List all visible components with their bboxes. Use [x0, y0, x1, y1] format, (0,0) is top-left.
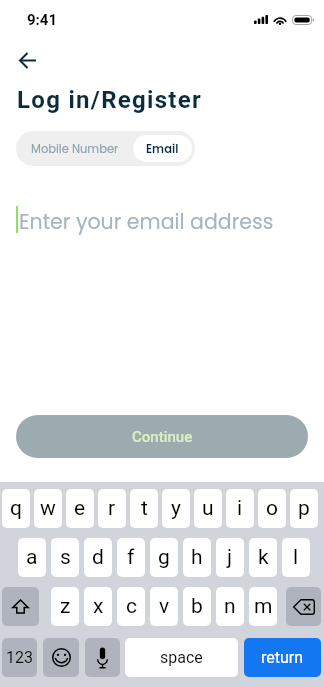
button[interactable]: p — [290, 489, 318, 528]
button[interactable]: u — [194, 489, 222, 528]
button[interactable]: q — [2, 489, 30, 528]
button[interactable]: i — [226, 489, 254, 528]
staticText: space — [160, 648, 203, 667]
button[interactable]: k — [249, 538, 277, 577]
button[interactable]: l — [282, 538, 310, 577]
button[interactable]: d — [84, 538, 112, 577]
staticText: v — [159, 594, 170, 619]
staticText: 9:41 — [27, 11, 58, 29]
staticText: a — [26, 545, 38, 570]
staticText: b — [191, 594, 203, 619]
staticText: 123 — [6, 648, 33, 667]
staticText: u — [202, 496, 214, 521]
staticText: g — [158, 545, 170, 570]
staticText: y — [171, 496, 181, 521]
staticText: Continue — [132, 428, 193, 446]
button[interactable]: m — [249, 587, 277, 626]
button[interactable]: g — [150, 538, 178, 577]
button[interactable]: Email — [133, 135, 192, 162]
staticText: z — [60, 594, 71, 619]
button[interactable]: x — [84, 587, 112, 626]
button[interactable]: Mobile Number — [16, 131, 133, 166]
button[interactable]: r — [98, 489, 126, 528]
staticText: n — [224, 594, 236, 619]
staticText: e — [74, 496, 86, 521]
button[interactable]: a — [18, 538, 46, 577]
staticText: f — [127, 545, 135, 570]
button[interactable]: Voice input — [85, 638, 120, 677]
button[interactable]: f — [117, 538, 145, 577]
button[interactable]: v — [150, 587, 178, 626]
button[interactable]: n — [216, 587, 244, 626]
button[interactable]: return — [244, 638, 321, 677]
staticText: Mobile Number — [31, 141, 119, 157]
staticText: q — [10, 496, 22, 521]
button[interactable]: y — [162, 489, 190, 528]
staticText: p — [298, 496, 310, 521]
button[interactable]: z — [51, 587, 79, 626]
staticText: j — [227, 545, 233, 570]
staticText: h — [191, 545, 203, 570]
staticText: Enter your email address — [19, 207, 274, 236]
button[interactable]: c — [117, 587, 145, 626]
staticText: t — [141, 496, 148, 521]
button[interactable]: h — [183, 538, 211, 577]
button[interactable]: s — [51, 538, 79, 577]
staticText: Email — [146, 141, 179, 157]
staticText: w — [40, 496, 56, 521]
button[interactable]: Back — [10, 43, 44, 77]
staticText: x — [93, 594, 104, 619]
staticText: l — [293, 545, 299, 570]
staticText: k — [258, 545, 269, 570]
staticText: r — [108, 496, 116, 521]
staticText: d — [92, 545, 104, 570]
button[interactable]: Backspace — [286, 587, 321, 626]
staticText: m — [254, 594, 273, 619]
staticText: Log in/Register — [17, 86, 203, 114]
button[interactable]: b — [183, 587, 211, 626]
staticText: s — [60, 545, 71, 570]
button[interactable]: Emoji — [43, 638, 79, 677]
button[interactable]: Continue — [16, 415, 308, 458]
staticText: o — [266, 496, 278, 521]
staticText: return — [261, 648, 304, 667]
button[interactable]: t — [130, 489, 158, 528]
button[interactable]: w — [34, 489, 62, 528]
button[interactable]: Shift — [2, 587, 39, 626]
button[interactable]: o — [258, 489, 286, 528]
button[interactable]: 123 — [2, 638, 37, 677]
staticText: i — [237, 496, 243, 521]
button[interactable]: j — [216, 538, 244, 577]
button[interactable]: e — [66, 489, 94, 528]
button[interactable]: space — [125, 638, 238, 677]
staticText: c — [126, 594, 137, 619]
